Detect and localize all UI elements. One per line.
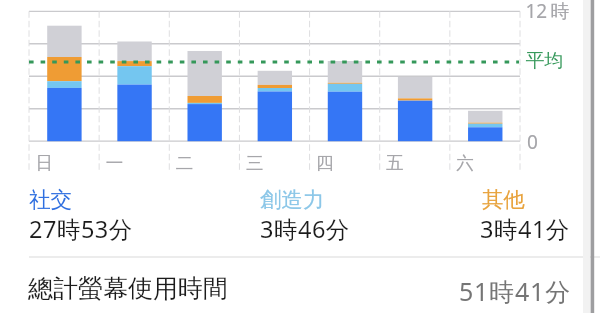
button[interactable] xyxy=(0,0,600,313)
